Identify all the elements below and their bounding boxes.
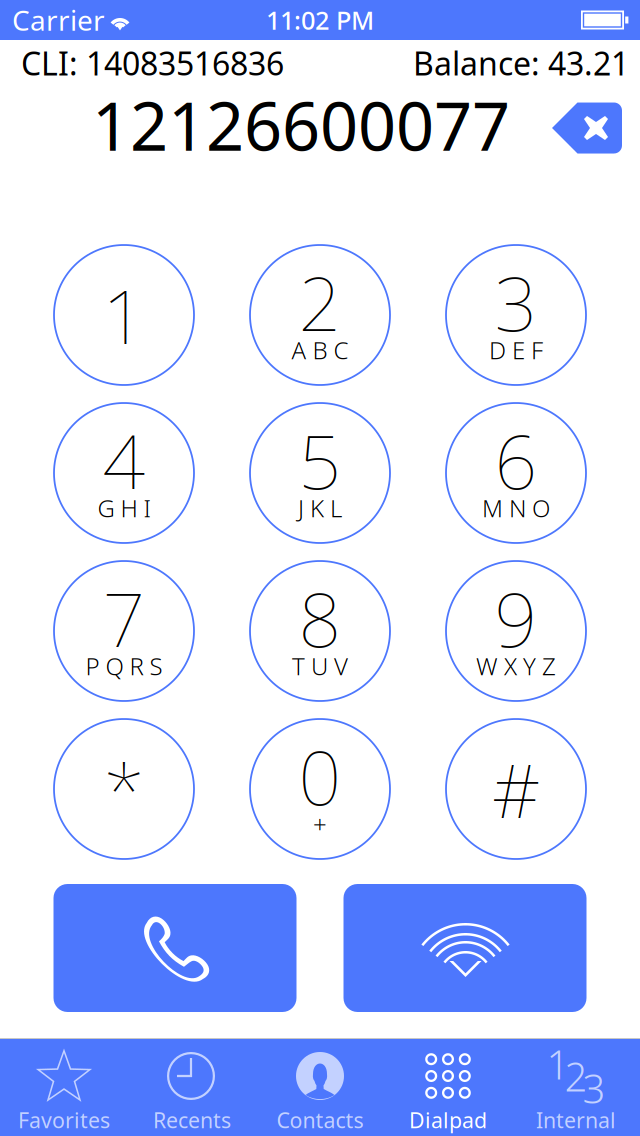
- staticText: +: [313, 808, 327, 840]
- staticText: Dialpad: [409, 1106, 487, 1134]
- staticText: 1: [102, 265, 145, 365]
- staticText: 2: [564, 1049, 587, 1102]
- staticText: A B C: [291, 334, 348, 366]
- staticText: T U V: [292, 650, 348, 682]
- button[interactable]: Dialpad: [384, 1038, 512, 1136]
- staticText: Contacts: [276, 1106, 363, 1134]
- staticText: 2: [298, 252, 341, 352]
- button[interactable]: 1: [54, 245, 194, 385]
- button[interactable]: Wi-Fi call: [343, 884, 586, 1012]
- staticText: 11:02 PM: [266, 3, 374, 37]
- button[interactable]: Recents: [128, 1038, 256, 1136]
- staticText: 9: [494, 568, 537, 668]
- button[interactable]: Favorites: [0, 1038, 128, 1136]
- staticText: 5: [298, 410, 341, 510]
- staticText: Favorites: [18, 1106, 110, 1134]
- staticText: P Q R S: [85, 650, 162, 682]
- staticText: 0: [298, 726, 341, 826]
- button[interactable]: 5: [250, 403, 390, 543]
- staticText: 8: [298, 568, 341, 668]
- staticText: 1: [546, 1037, 569, 1090]
- staticText: J K L: [298, 492, 342, 524]
- button[interactable]: 4: [54, 403, 194, 543]
- staticText: Recents: [153, 1106, 231, 1134]
- staticText: G H I: [97, 492, 150, 524]
- button[interactable]: 8: [250, 561, 390, 701]
- button[interactable]: 1: [512, 1038, 640, 1136]
- button[interactable]: Delete: [544, 86, 630, 170]
- button[interactable]: 7: [54, 561, 194, 701]
- staticText: D E F: [489, 334, 543, 366]
- staticText: *: [103, 739, 144, 839]
- staticText: 3: [582, 1061, 605, 1114]
- button[interactable]: Contacts: [256, 1038, 384, 1136]
- staticText: 6: [494, 410, 537, 510]
- staticText: Carrier: [12, 1, 105, 39]
- button[interactable]: 0: [250, 719, 390, 859]
- button[interactable]: #: [446, 719, 586, 859]
- button[interactable]: 6: [446, 403, 586, 543]
- staticText: Balance: 43.21: [413, 42, 629, 84]
- staticText: 7: [102, 568, 145, 668]
- staticText: Internal: [536, 1106, 616, 1134]
- button[interactable]: Call: [53, 884, 296, 1012]
- staticText: 4: [102, 410, 145, 510]
- button[interactable]: *: [54, 719, 194, 859]
- staticText: #: [492, 739, 540, 839]
- button[interactable]: 9: [446, 561, 586, 701]
- staticText: W X Y Z: [476, 650, 556, 682]
- staticText: CLI: 14083516836: [21, 42, 284, 84]
- staticText: 12126600077: [92, 81, 510, 169]
- button[interactable]: 3: [446, 245, 586, 385]
- button[interactable]: 2: [250, 245, 390, 385]
- staticText: 3: [494, 252, 537, 352]
- staticText: M N O: [482, 492, 550, 524]
